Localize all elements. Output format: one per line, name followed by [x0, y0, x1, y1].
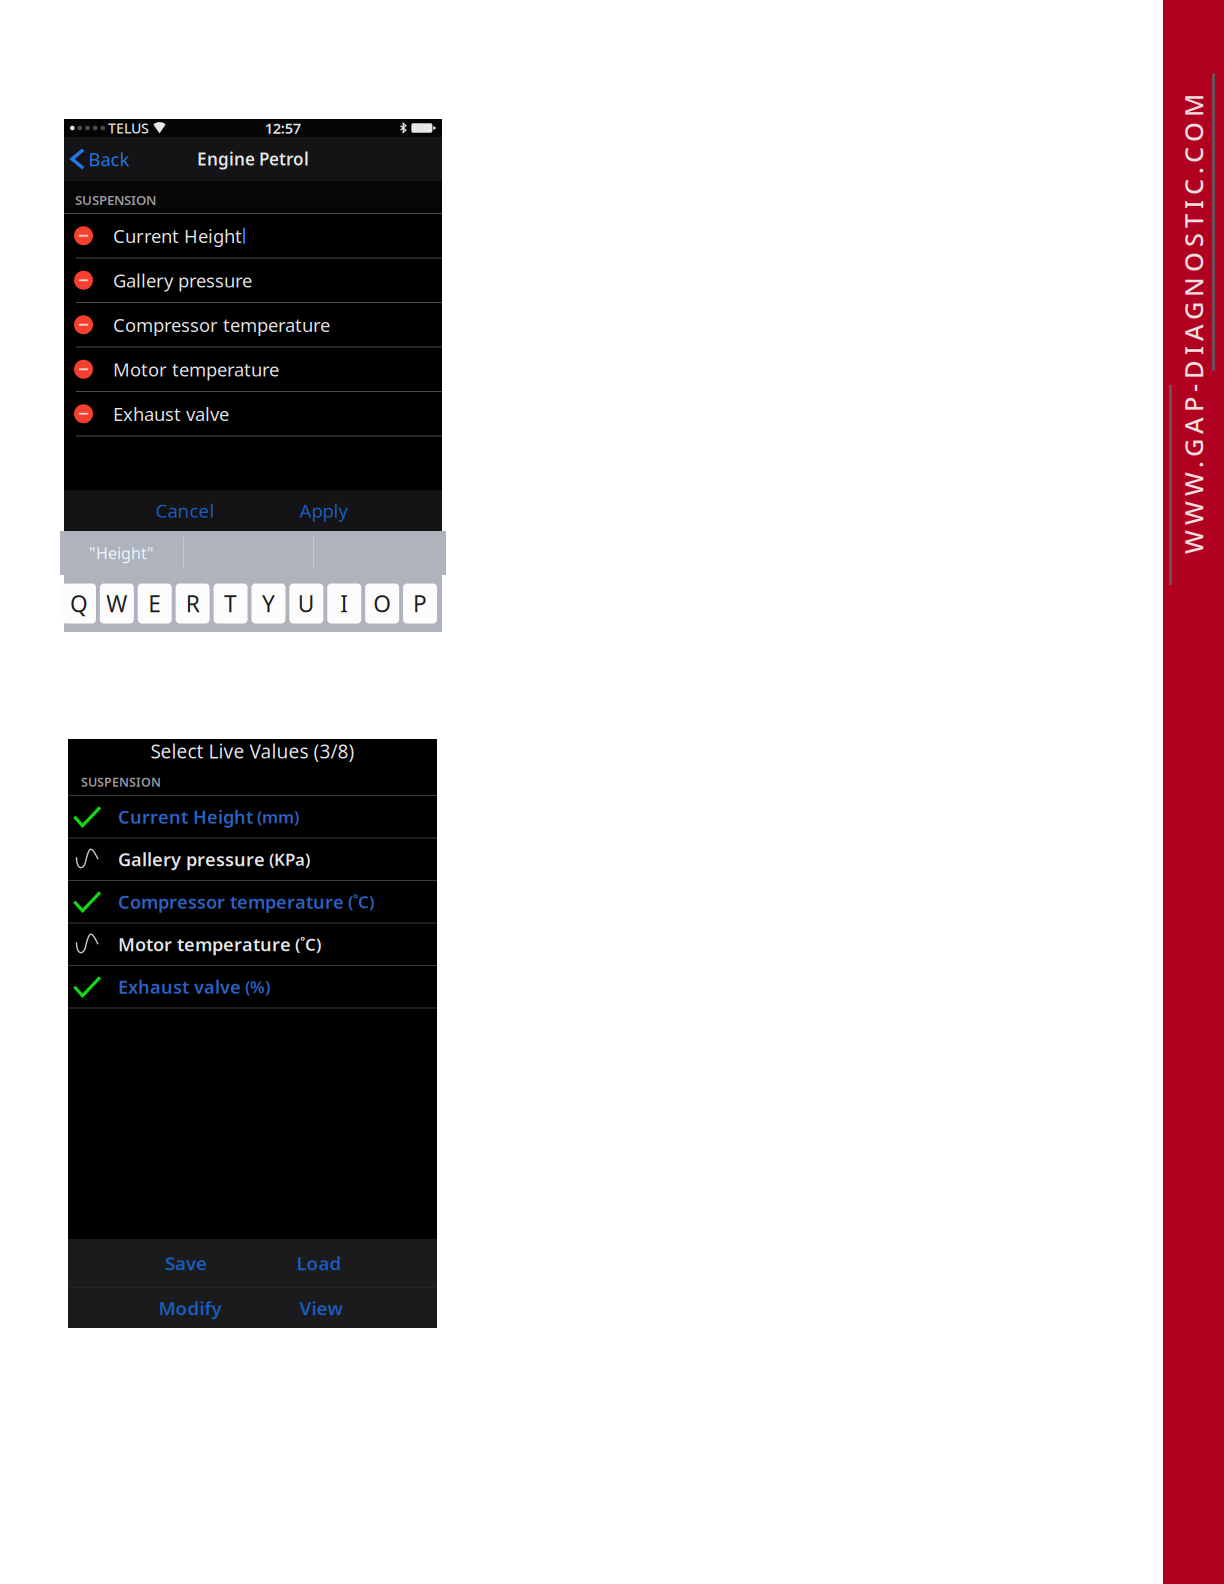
button[interactable]: Gallery pressure [64, 258, 442, 303]
button[interactable]: Compressor temperature [68, 881, 437, 923]
button[interactable]: Gallery pressure [68, 838, 437, 881]
staticText: (mm) [257, 805, 299, 828]
staticText: Motor temperature [118, 932, 291, 957]
staticText: Engine Petrol [197, 147, 309, 171]
button[interactable]: R [176, 583, 210, 623]
button[interactable]: Motor temperature [68, 923, 437, 966]
staticText: SUSPENSION [75, 191, 156, 209]
button[interactable]: Load [264, 1239, 374, 1287]
button[interactable]: Back [64, 137, 138, 181]
staticText: Gallery pressure [118, 847, 265, 872]
staticText: Apply [299, 498, 348, 523]
button[interactable]: E [138, 583, 172, 623]
button[interactable]: Exhaust valve [64, 392, 442, 436]
staticText: E [148, 588, 161, 618]
button[interactable]: Compressor temperature [64, 303, 442, 347]
button[interactable]: Motor temperature [64, 347, 442, 392]
staticText: WWW.GAP-DIAGNOSTIC.COM [963, 307, 1224, 341]
staticText: (˚C) [348, 890, 374, 913]
staticText: Exhaust valve [118, 974, 241, 999]
button[interactable]: U [289, 583, 323, 623]
button[interactable]: T [214, 583, 248, 623]
staticText: Exhaust valve [113, 401, 229, 426]
staticText: R [186, 588, 200, 618]
button[interactable]: P [403, 583, 437, 623]
staticText: Current Height [113, 223, 242, 248]
staticText: Modify [158, 1296, 221, 1320]
staticText: Back [89, 146, 130, 172]
button[interactable]: Current Height [68, 796, 437, 838]
button[interactable]: W [100, 583, 134, 623]
staticText: Select Live Values (3/8) [150, 738, 354, 764]
staticText: Save [165, 1251, 207, 1275]
button[interactable]: I [327, 583, 361, 623]
staticText: W [106, 588, 127, 618]
staticText: I [340, 588, 348, 618]
staticText: "Height" [89, 542, 154, 564]
staticText: O [373, 588, 391, 618]
button[interactable]: "Height" [60, 531, 183, 575]
staticText: Cancel [155, 498, 214, 523]
staticText: TELUS [108, 118, 149, 138]
button[interactable]: O [365, 583, 399, 623]
button[interactable]: View [266, 1288, 376, 1328]
staticText: (KPa) [269, 848, 310, 871]
button[interactable]: Exhaust valve [68, 966, 437, 1008]
staticText: T [224, 588, 237, 618]
staticText: (%) [245, 975, 270, 998]
staticText: (˚C) [295, 933, 321, 956]
button[interactable]: Current Height [64, 214, 442, 258]
staticText: SUSPENSION [81, 773, 161, 791]
staticText: U [298, 588, 315, 618]
staticText: Motor temperature [113, 357, 279, 382]
button[interactable]: Save [131, 1239, 241, 1287]
staticText: P [413, 588, 427, 618]
staticText: Y [262, 588, 275, 618]
staticText: Compressor temperature [118, 889, 344, 914]
staticText: Compressor temperature [113, 312, 330, 337]
staticText: Current Height [118, 804, 253, 829]
staticText: Q [70, 588, 88, 618]
button[interactable]: Apply [269, 490, 379, 531]
staticText: View [299, 1296, 342, 1320]
staticText: Load [296, 1251, 341, 1275]
button[interactable]: Y [251, 583, 285, 623]
button[interactable]: Modify [135, 1288, 245, 1328]
button[interactable]: Cancel [130, 490, 240, 531]
staticText: Gallery pressure [113, 268, 252, 293]
button[interactable]: Q [62, 583, 96, 623]
staticText: 12:57 [265, 118, 301, 138]
